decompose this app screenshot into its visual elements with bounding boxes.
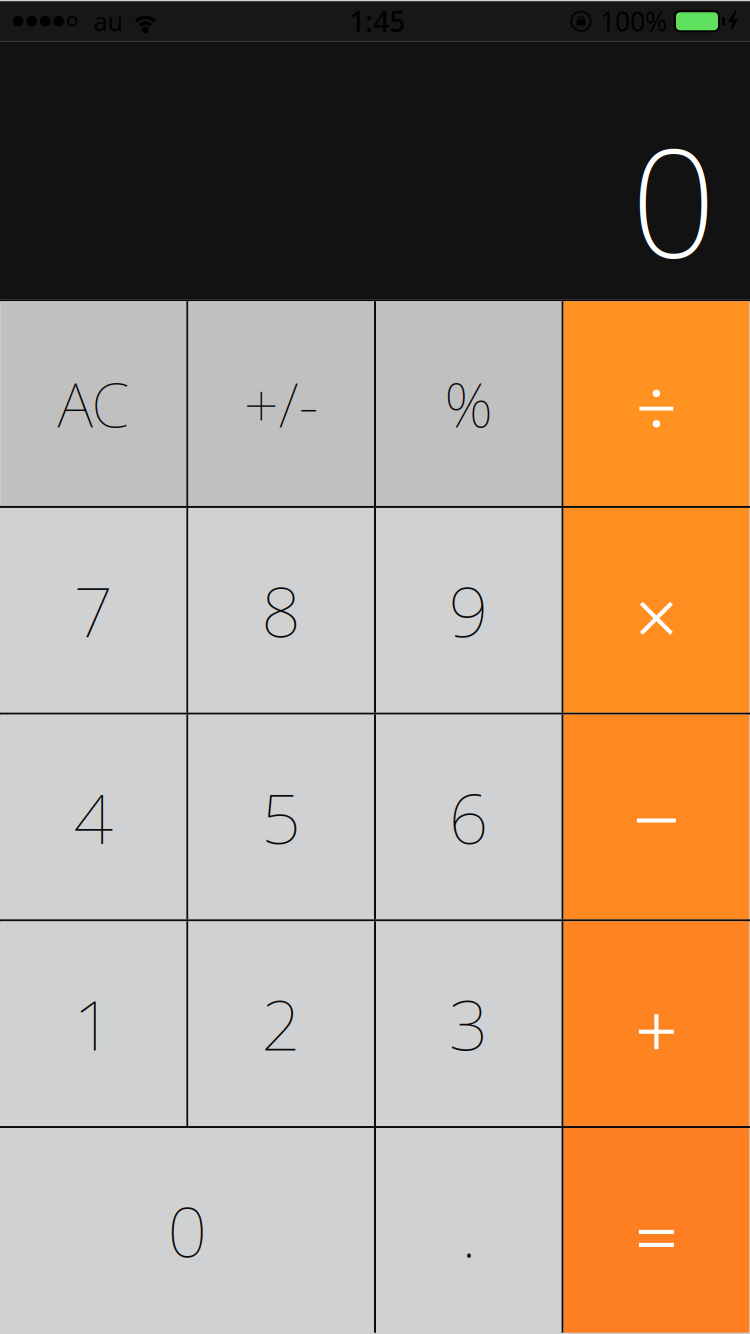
button[interactable]: . [376, 1128, 562, 1333]
button[interactable]: 5 [188, 715, 374, 919]
staticText: . [461, 1184, 476, 1276]
staticText: au [93, 4, 123, 38]
staticText: +/- [244, 363, 319, 444]
staticText: 9 [449, 564, 489, 656]
button[interactable]: AC [1, 301, 186, 506]
button[interactable]: 1 [1, 921, 186, 1126]
staticText: 0 [631, 101, 716, 299]
staticText: 1:45 [349, 3, 405, 40]
staticText: 0 [167, 1184, 207, 1276]
button[interactable]: 3 [376, 921, 562, 1126]
staticText: 5 [261, 771, 301, 863]
button[interactable]: Divide [564, 301, 749, 506]
button[interactable]: 7 [1, 508, 186, 713]
staticText: 4 [74, 771, 114, 863]
button[interactable]: 0 [1, 1128, 374, 1333]
button[interactable]: Equals [564, 1128, 749, 1333]
staticText: 2 [261, 978, 301, 1070]
button[interactable]: 9 [376, 508, 562, 713]
button[interactable]: 4 [1, 715, 186, 919]
button[interactable]: Multiply [564, 508, 749, 713]
staticText: 1 [74, 978, 114, 1070]
staticText: 100% [600, 3, 667, 39]
button[interactable]: 8 [188, 508, 374, 713]
staticText: 6 [449, 771, 489, 863]
staticText: % [444, 363, 493, 444]
staticText: 3 [449, 978, 489, 1070]
button[interactable]: +/- [188, 301, 374, 506]
button[interactable]: Subtract [564, 715, 749, 919]
staticText: 7 [74, 564, 114, 656]
button[interactable]: 6 [376, 715, 562, 919]
staticText: 8 [261, 564, 301, 656]
staticText: AC [58, 363, 130, 444]
button[interactable]: Add [564, 921, 749, 1126]
button[interactable]: 2 [188, 921, 374, 1126]
button[interactable]: % [376, 301, 562, 506]
